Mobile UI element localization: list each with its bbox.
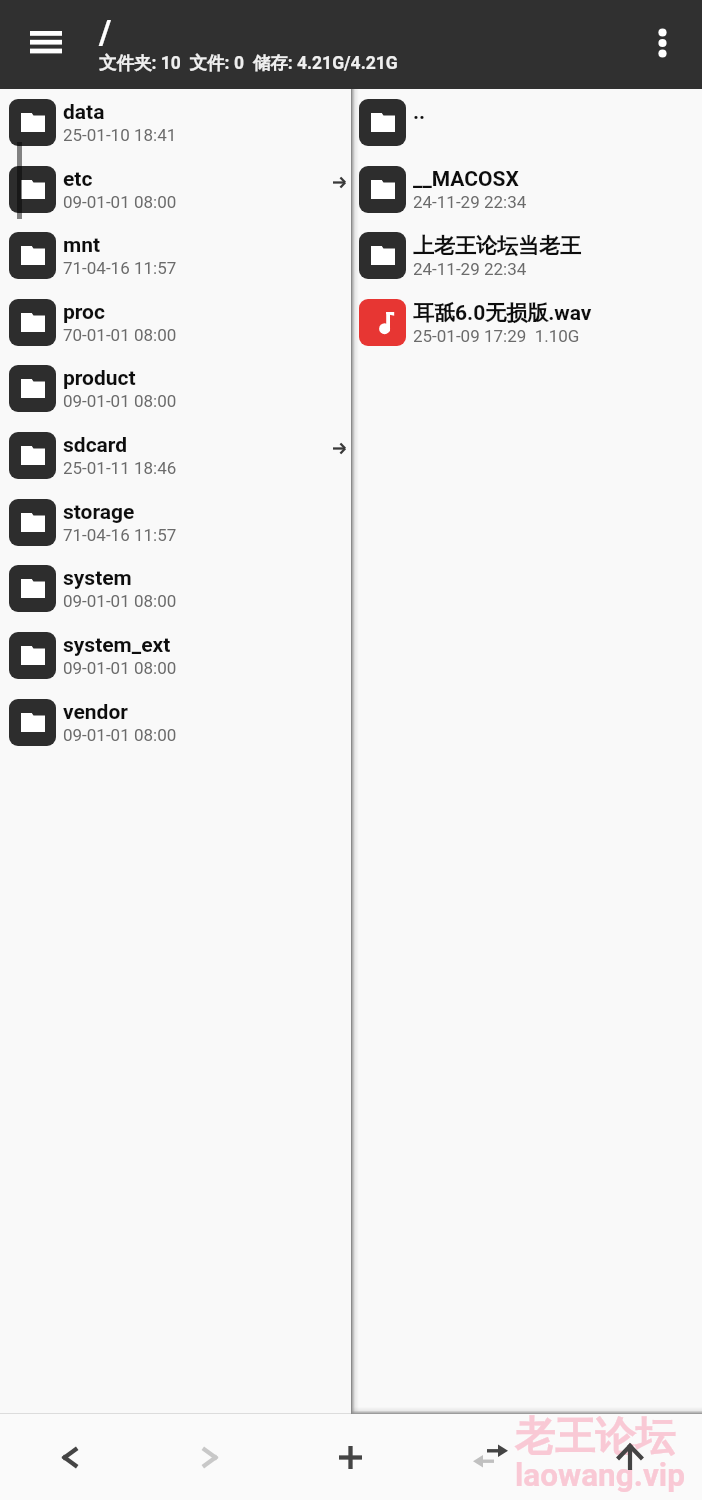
staticText: 25-01-11 18:46 [63, 458, 177, 478]
staticText: 09-01-01 08:00 [63, 591, 177, 611]
staticText: __MACOSX [413, 167, 519, 192]
staticText: 上老王论坛当老王 [413, 233, 581, 259]
staticText: 71-04-16 11:57 [63, 525, 177, 545]
button[interactable]: mnt [0, 222, 351, 289]
button[interactable]: vendor [0, 689, 351, 756]
staticText: 09-01-01 08:00 [63, 391, 177, 411]
button[interactable]: sdcard [0, 422, 351, 489]
staticText: 老王论坛 [515, 1411, 675, 1461]
staticText: 70-01-01 08:00 [63, 325, 177, 345]
staticText: 71-04-16 11:57 [63, 258, 177, 278]
button[interactable]: Transfer [420, 1414, 560, 1500]
button[interactable]: Up [560, 1414, 700, 1500]
button[interactable]: product [0, 355, 351, 422]
button[interactable]: .. [351, 89, 702, 156]
staticText: / [99, 13, 112, 52]
button[interactable]: storage [0, 489, 351, 556]
button[interactable]: Forward [140, 1414, 280, 1500]
staticText: 24-11-29 22:34 [413, 192, 527, 212]
staticText: 09-01-01 08:00 [63, 725, 177, 745]
button[interactable]: 上老王论坛当老王 [351, 222, 702, 289]
staticText: etc [63, 167, 93, 192]
staticText: sdcard [63, 433, 128, 458]
staticText: data [63, 100, 105, 125]
staticText: 耳舐6.0无损版.wav [413, 300, 592, 326]
staticText: mnt [63, 233, 101, 258]
button[interactable]: More options [634, 15, 690, 71]
staticText: storage [63, 500, 135, 525]
staticText: 文件夹: 10 文件: 0 储存: 4.21G/4.21G [99, 52, 398, 74]
staticText: .. [413, 100, 426, 125]
button[interactable]: Add [280, 1414, 420, 1500]
staticText: 24-11-29 22:34 [413, 259, 527, 279]
button[interactable]: proc [0, 289, 351, 356]
button[interactable]: __MACOSX [351, 156, 702, 223]
staticText: vendor [63, 700, 128, 725]
staticText: 25-01-09 17:29 1.10G [413, 326, 580, 346]
button[interactable]: etc [0, 156, 351, 223]
staticText: system_ext [63, 633, 171, 658]
staticText: 09-01-01 08:00 [63, 192, 177, 212]
button[interactable]: Menu [14, 10, 78, 74]
button[interactable]: system [0, 555, 351, 622]
staticText: proc [63, 300, 105, 325]
staticText: laowang.vip [515, 1457, 685, 1494]
button[interactable]: 耳舐6.0无损版.wav [351, 289, 702, 356]
button[interactable]: system_ext [0, 622, 351, 689]
staticText: 25-01-10 18:41 [63, 125, 177, 145]
staticText: 09-01-01 08:00 [63, 658, 177, 678]
button[interactable]: Back [0, 1414, 140, 1500]
staticText: system [63, 566, 132, 591]
staticText: product [63, 366, 136, 391]
button[interactable]: data [0, 89, 351, 156]
